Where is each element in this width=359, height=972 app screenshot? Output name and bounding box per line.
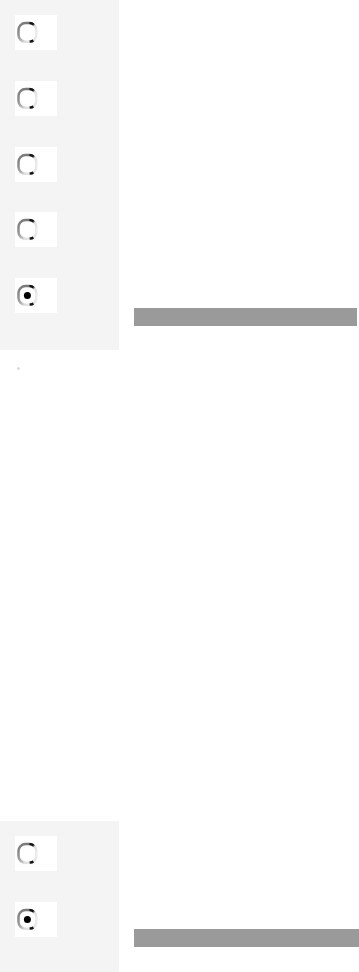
button[interactable]: Option 3 xyxy=(15,147,57,182)
button[interactable]: Option 5 xyxy=(15,278,57,313)
button[interactable]: Option 1 xyxy=(15,15,57,50)
button[interactable]: Option 4 xyxy=(15,212,57,247)
button[interactable]: Option B xyxy=(15,902,57,937)
button[interactable]: Option 2 xyxy=(15,81,57,116)
button[interactable]: Option A xyxy=(15,836,57,871)
